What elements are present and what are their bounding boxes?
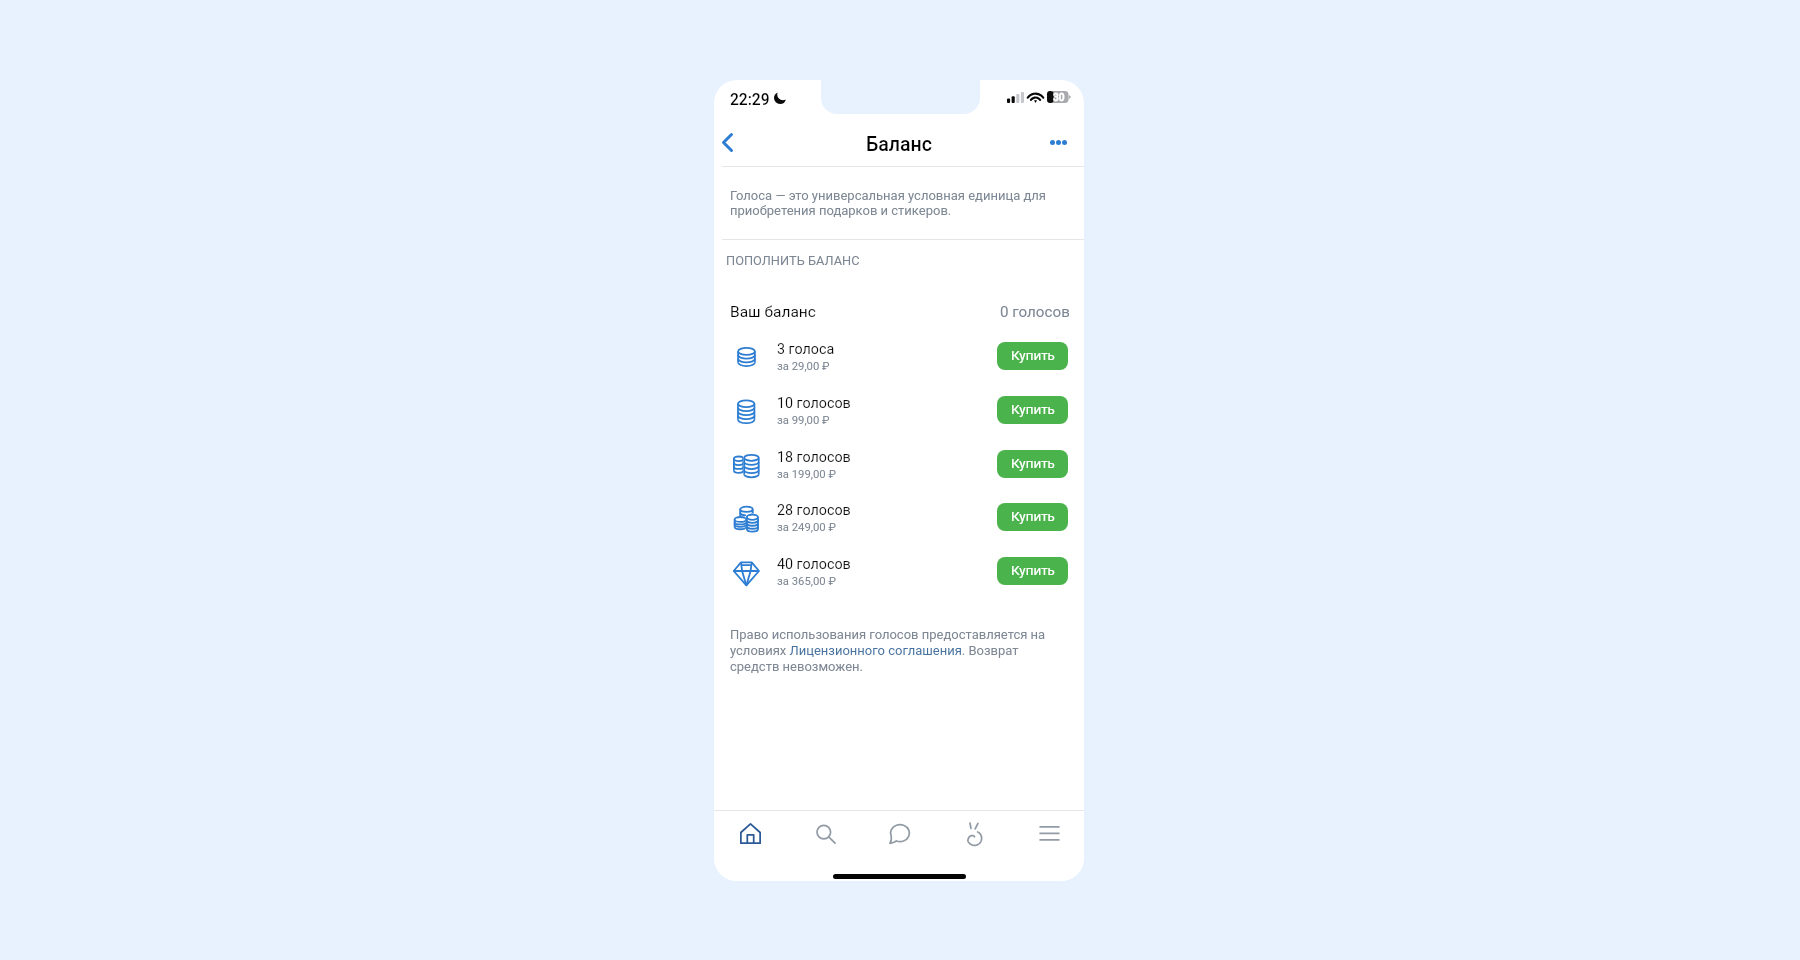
staticText: Голоса — это универсальная условная един… [730,188,1052,219]
staticText: Купить [1011,402,1055,418]
staticText: Купить [1011,563,1055,579]
staticText: 28 голосов [777,502,851,519]
button[interactable]: 10 голосов [714,383,1084,437]
button[interactable]: Купить [997,342,1068,370]
button[interactable]: Back [714,120,741,164]
button[interactable]: Menu [1010,811,1084,855]
staticText: 0 голосов [1000,303,1070,321]
button[interactable]: Купить [997,503,1068,531]
button[interactable]: 40 голосов [714,544,1084,598]
staticText: 30 [1053,92,1065,104]
button[interactable]: More options [1040,120,1077,164]
button[interactable]: 28 голосов [714,490,1084,544]
staticText: 22:29 [730,91,770,109]
staticText: 10 голосов [777,395,851,412]
staticText: за 29,00 ₽ [777,360,830,373]
staticText: Право использования голосов предоставляе… [730,627,1048,674]
staticText: за 199,00 ₽ [777,468,836,481]
staticText: Баланс [866,133,933,156]
staticText: 3 голоса [777,341,835,358]
button[interactable]: Купить [997,396,1068,424]
staticText: за 249,00 ₽ [777,521,836,534]
staticText: за 99,00 ₽ [777,414,830,427]
button[interactable]: Clips [936,811,1010,855]
staticText: 18 голосов [777,449,851,466]
button[interactable]: Home [714,811,788,855]
staticText: Купить [1011,509,1055,525]
staticText: Купить [1011,348,1055,364]
staticText: 40 голосов [777,556,851,573]
button[interactable]: 18 голосов [714,437,1084,491]
button[interactable]: Купить [997,450,1068,478]
staticText: за 365,00 ₽ [777,575,836,588]
staticText: Купить [1011,456,1055,472]
button[interactable]: Search [788,811,862,855]
button[interactable]: 3 голоса [714,329,1084,383]
staticText: ПОПОЛНИТЬ БАЛАНС [726,253,860,268]
button[interactable]: Купить [997,557,1068,585]
staticText: Ваш баланс [730,303,816,321]
button[interactable]: Messages [862,811,936,855]
